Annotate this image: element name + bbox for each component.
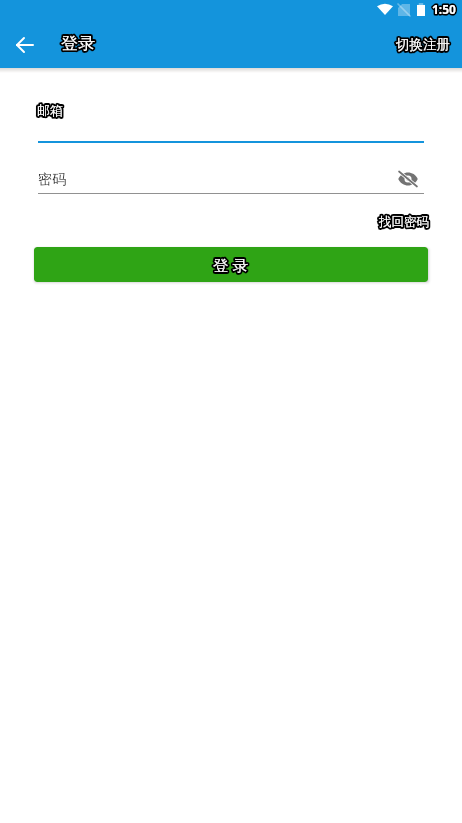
staticText: 登录 <box>61 33 95 54</box>
staticText: 邮箱 <box>37 102 63 118</box>
staticText: 邮箱 <box>37 102 63 118</box>
staticText: 登 录 <box>213 254 249 275</box>
button[interactable]: Toggle password visibility <box>396 168 420 190</box>
button[interactable]: 找回密码 <box>379 214 429 230</box>
staticText: 1:50 <box>432 1 456 17</box>
staticText: 切换注册 <box>396 36 450 53</box>
staticText: 登录 <box>61 33 95 54</box>
button[interactable]: 切换注册 <box>396 36 450 53</box>
staticText: 切换注册 <box>396 36 450 53</box>
button[interactable]: 登 录 <box>34 247 428 282</box>
staticText: 1:50 <box>432 1 456 17</box>
staticText: 密码 <box>38 171 66 189</box>
button[interactable]: Back <box>9 29 41 61</box>
staticText: 找回密码 <box>379 214 429 230</box>
staticText: 登 录 <box>213 254 249 275</box>
staticText: 找回密码 <box>379 214 429 230</box>
